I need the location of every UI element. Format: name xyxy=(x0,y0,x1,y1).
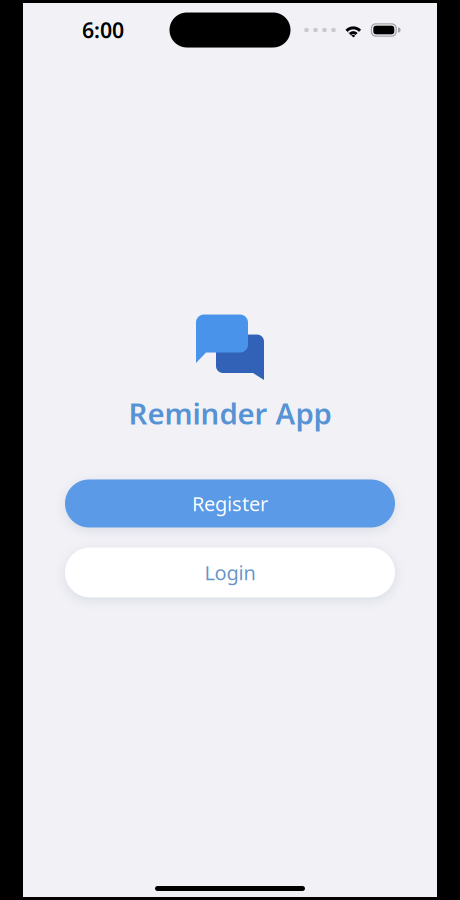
staticText: Reminder App xyxy=(128,393,331,432)
staticText: 6:00 xyxy=(82,16,124,44)
button[interactable]: Register xyxy=(65,479,395,527)
staticText: Login xyxy=(204,559,255,586)
staticText: Register xyxy=(192,490,268,517)
button[interactable]: Login xyxy=(65,547,395,597)
